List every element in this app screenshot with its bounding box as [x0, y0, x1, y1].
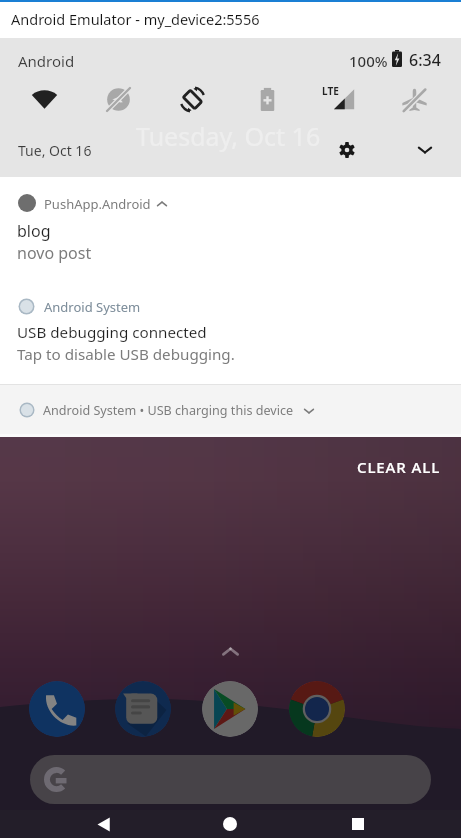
button[interactable]: Expand quick settings	[409, 134, 441, 166]
button[interactable]: Home	[210, 810, 250, 838]
button[interactable]: Back	[83, 810, 123, 838]
staticText: CLEAR ALL	[357, 457, 441, 477]
staticText: PushApp.Android	[44, 195, 151, 213]
staticText: Android Emulator - my_device2:5556	[11, 9, 260, 29]
button[interactable]: Android System	[0, 285, 461, 384]
button[interactable]: CLEAR ALL	[343, 448, 455, 486]
button[interactable]: Phone	[29, 681, 85, 737]
button[interactable]: Quick setting	[166, 76, 218, 122]
button[interactable]: Quick setting	[241, 76, 293, 122]
button[interactable]: Search	[30, 755, 431, 804]
staticText: Tue, Oct 16	[18, 141, 92, 160]
staticText: blog	[17, 220, 51, 242]
staticText: novo post	[17, 242, 92, 264]
button[interactable]: Play Store	[202, 681, 258, 737]
button[interactable]: Quick setting	[92, 76, 144, 122]
staticText: 6:34	[409, 49, 441, 71]
button[interactable]: Messages	[115, 681, 171, 737]
button[interactable]: Android System • USB charging this devic…	[0, 385, 461, 434]
button[interactable]: Quick setting	[18, 76, 70, 122]
button[interactable]: Chrome	[289, 681, 345, 737]
button[interactable]: All apps	[215, 636, 245, 666]
staticText: Android	[18, 51, 75, 71]
staticText: LTE	[322, 84, 339, 98]
staticText: 100%	[349, 51, 388, 71]
staticText: Android System	[44, 298, 141, 316]
staticText: Android System • USB charging this devic…	[43, 402, 294, 419]
staticText: Tuesday, Oct 16	[136, 119, 321, 153]
staticText: Tap to disable USB debugging.	[17, 344, 235, 365]
button[interactable]: Recents	[338, 810, 378, 838]
button[interactable]: Quick setting	[315, 76, 367, 122]
button[interactable]: Settings	[331, 134, 363, 166]
staticText: USB debugging connected	[17, 322, 207, 343]
button[interactable]: PushApp.Android	[0, 177, 461, 285]
button[interactable]: Quick setting	[388, 76, 440, 122]
